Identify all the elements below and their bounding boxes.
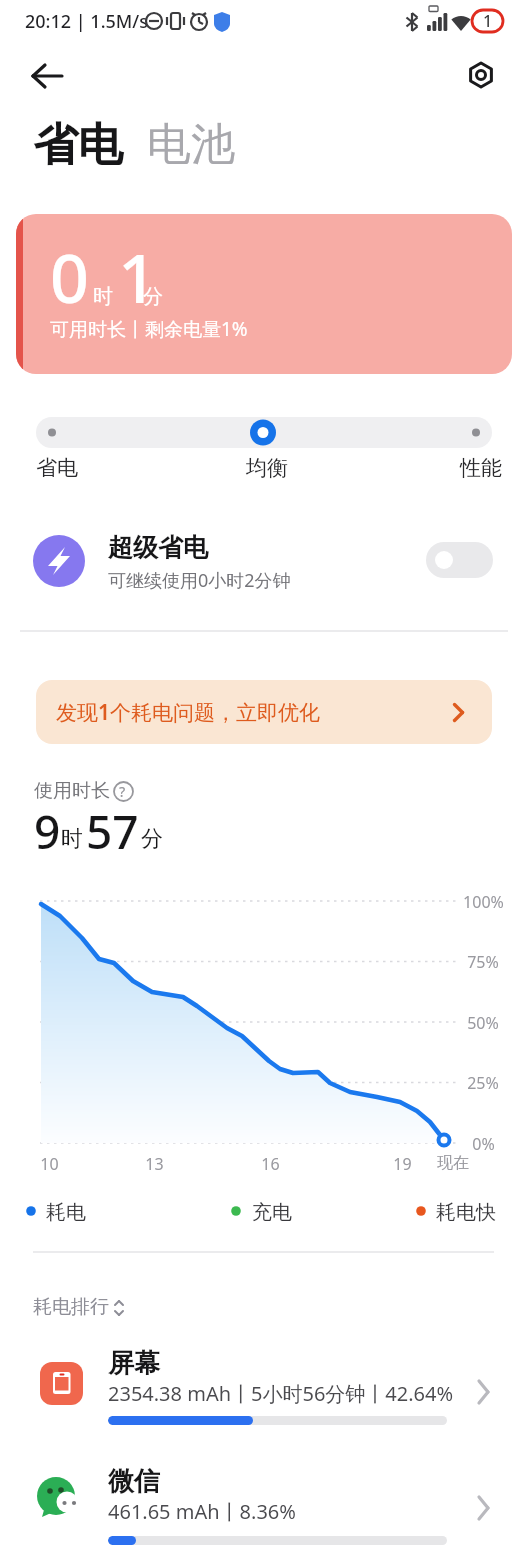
button[interactable]: 耗电排行 — [24, 1288, 224, 1328]
staticText: 可用时长丨剩余电量1% — [50, 316, 248, 342]
staticText: 耗电快 — [436, 1200, 496, 1225]
staticText: 时 — [61, 825, 83, 853]
button[interactable]: 0 — [16, 214, 512, 374]
staticText: 分 — [141, 825, 163, 853]
staticText: 性能 — [460, 455, 502, 481]
staticText: ? — [119, 782, 126, 801]
staticText: 现在 — [437, 1153, 469, 1173]
staticText: 1 — [483, 10, 493, 32]
staticText: 超级省电 — [108, 532, 208, 563]
staticText: 省电 — [36, 455, 78, 481]
staticText: 10 — [40, 1153, 59, 1175]
staticText: 13 — [145, 1153, 164, 1175]
staticText: 461.65 mAh丨8.36% — [108, 1498, 296, 1525]
button[interactable]: 屏幕 — [0, 1336, 528, 1442]
staticText: 时 — [93, 284, 113, 309]
staticText: 19 — [393, 1153, 412, 1175]
staticText: 100% — [463, 891, 504, 913]
staticText: 0 — [50, 230, 89, 323]
button[interactable]: 微信 — [0, 1454, 528, 1560]
staticText: 耗电排行 — [33, 1295, 109, 1319]
staticText: 2354.38 mAh丨5小时56分钟丨42.64% — [108, 1380, 454, 1407]
staticText: 微信 — [108, 1465, 160, 1498]
staticText: 16 — [261, 1153, 280, 1175]
staticText: 省电 — [33, 117, 123, 174]
staticText: 1 — [118, 230, 157, 323]
staticText: 25% — [467, 1072, 499, 1094]
staticText: 分 — [143, 284, 163, 309]
staticText: 充电 — [252, 1200, 292, 1225]
button[interactable] — [22, 56, 74, 96]
staticText: 9 — [34, 800, 61, 863]
staticText: 可继续使用0小时2分钟 — [108, 568, 291, 593]
staticText: 使用时长 — [34, 779, 110, 803]
staticText: 均衡 — [246, 455, 288, 481]
staticText: 20:12 | 1.5M/s — [25, 9, 149, 34]
staticText: 发现1个耗电问题，立即优化 — [56, 698, 321, 727]
staticText: 0% — [472, 1133, 495, 1155]
staticText: 57 — [86, 800, 139, 863]
staticText: 屏幕 — [108, 1347, 160, 1380]
button[interactable]: 超级省电 — [20, 510, 508, 612]
staticText: 75% — [467, 951, 499, 973]
staticText: 耗电 — [46, 1200, 86, 1225]
button[interactable]: 发现1个耗电问题，立即优化 — [36, 680, 492, 744]
button[interactable] — [462, 56, 502, 96]
button[interactable] — [36, 417, 492, 448]
staticText: 50% — [467, 1012, 499, 1034]
staticText: 电池 — [147, 117, 235, 172]
